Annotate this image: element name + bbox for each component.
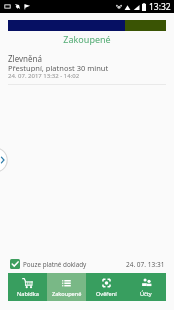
staticText: Přestupní, platnost 30 minut bbox=[8, 63, 109, 72]
staticText: Ověření bbox=[96, 290, 117, 298]
staticText: Účty bbox=[140, 290, 152, 298]
button[interactable]: Ověření bbox=[86, 273, 126, 301]
button[interactable]: Zakoupené bbox=[47, 273, 86, 301]
staticText: Zakoupené bbox=[52, 290, 82, 298]
staticText: Zlevněná bbox=[8, 53, 42, 63]
staticText: Pouze platné doklady bbox=[23, 260, 87, 269]
button[interactable]: Pouze platné doklady bbox=[10, 258, 87, 268]
staticText: Nabídka bbox=[17, 290, 39, 298]
button[interactable]: Účty bbox=[126, 273, 166, 301]
staticText: 24. 07. 2017 13:32 - 14:02 bbox=[8, 72, 80, 79]
staticText: 24. 07. 13:31 bbox=[126, 260, 165, 269]
staticText: Zakoupené bbox=[0, 33, 174, 45]
staticText: 13:32 bbox=[149, 1, 171, 13]
button[interactable]: Next ticket bbox=[0, 148, 7, 172]
button[interactable]: Nabídka bbox=[8, 273, 47, 301]
